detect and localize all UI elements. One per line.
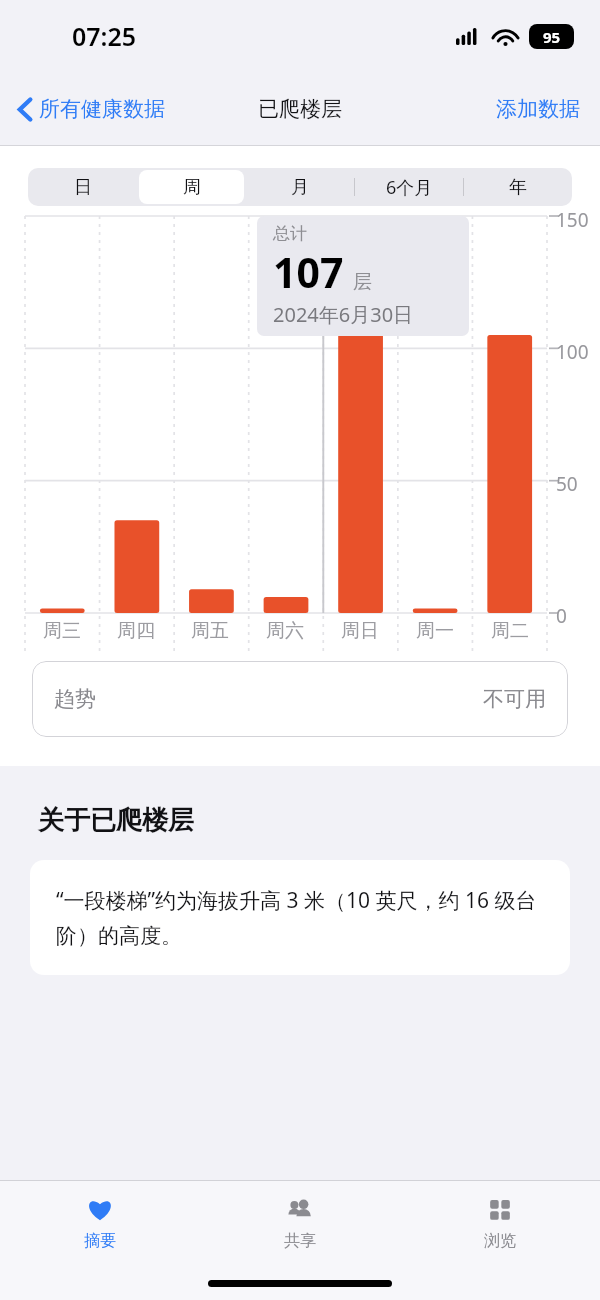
staticText: 周四 [117, 619, 155, 643]
staticText: 95 [543, 27, 561, 47]
button[interactable]: 年 [466, 170, 570, 204]
button[interactable]: 共享 [200, 1192, 400, 1255]
staticText: 07:25 [72, 19, 137, 53]
staticText: 所有健康数据 [39, 96, 165, 122]
staticText: 107 [273, 244, 344, 300]
button[interactable]: 6个月 [357, 170, 461, 204]
staticText: 2024年6月30日 [273, 301, 414, 328]
staticText: 月 [291, 176, 309, 199]
staticText: 周一 [416, 619, 454, 643]
button[interactable]: 所有健康数据 [14, 88, 169, 130]
staticText: 已爬楼层 [258, 96, 342, 122]
staticText: 浏览 [484, 1231, 516, 1251]
staticText: 层 [353, 270, 372, 294]
staticText: 周五 [191, 619, 229, 643]
staticText: 100 [556, 339, 589, 365]
staticText: 总计 [273, 223, 307, 244]
staticText: 趋势 [54, 686, 96, 712]
staticText: “一段楼梯”约为海拔升高 3 米（10 英尺，约 16 级台阶）的高度。 [56, 886, 544, 949]
staticText: 150 [556, 207, 589, 233]
staticText: 不可用 [483, 686, 546, 712]
button[interactable]: 周 [139, 170, 244, 204]
button[interactable]: 日 [30, 170, 135, 204]
staticText: 共享 [284, 1231, 316, 1251]
staticText: 摘要 [84, 1231, 116, 1251]
staticText: 周六 [266, 619, 304, 643]
button[interactable]: 趋势 [32, 661, 568, 737]
button[interactable]: 添加数据 [492, 92, 584, 126]
staticText: 日 [74, 176, 92, 199]
button[interactable]: 摘要 [0, 1192, 200, 1255]
staticText: 周日 [341, 619, 379, 643]
button[interactable]: 月 [248, 170, 352, 204]
button[interactable]: 浏览 [400, 1192, 600, 1255]
staticText: 周三 [43, 619, 81, 643]
staticText: 年 [509, 176, 527, 199]
staticText: 周 [183, 176, 201, 199]
staticText: 50 [556, 471, 578, 497]
staticText: 关于已爬楼层 [38, 804, 194, 837]
staticText: 6个月 [386, 175, 433, 200]
staticText: 0 [556, 603, 567, 629]
staticText: 周二 [491, 619, 529, 643]
